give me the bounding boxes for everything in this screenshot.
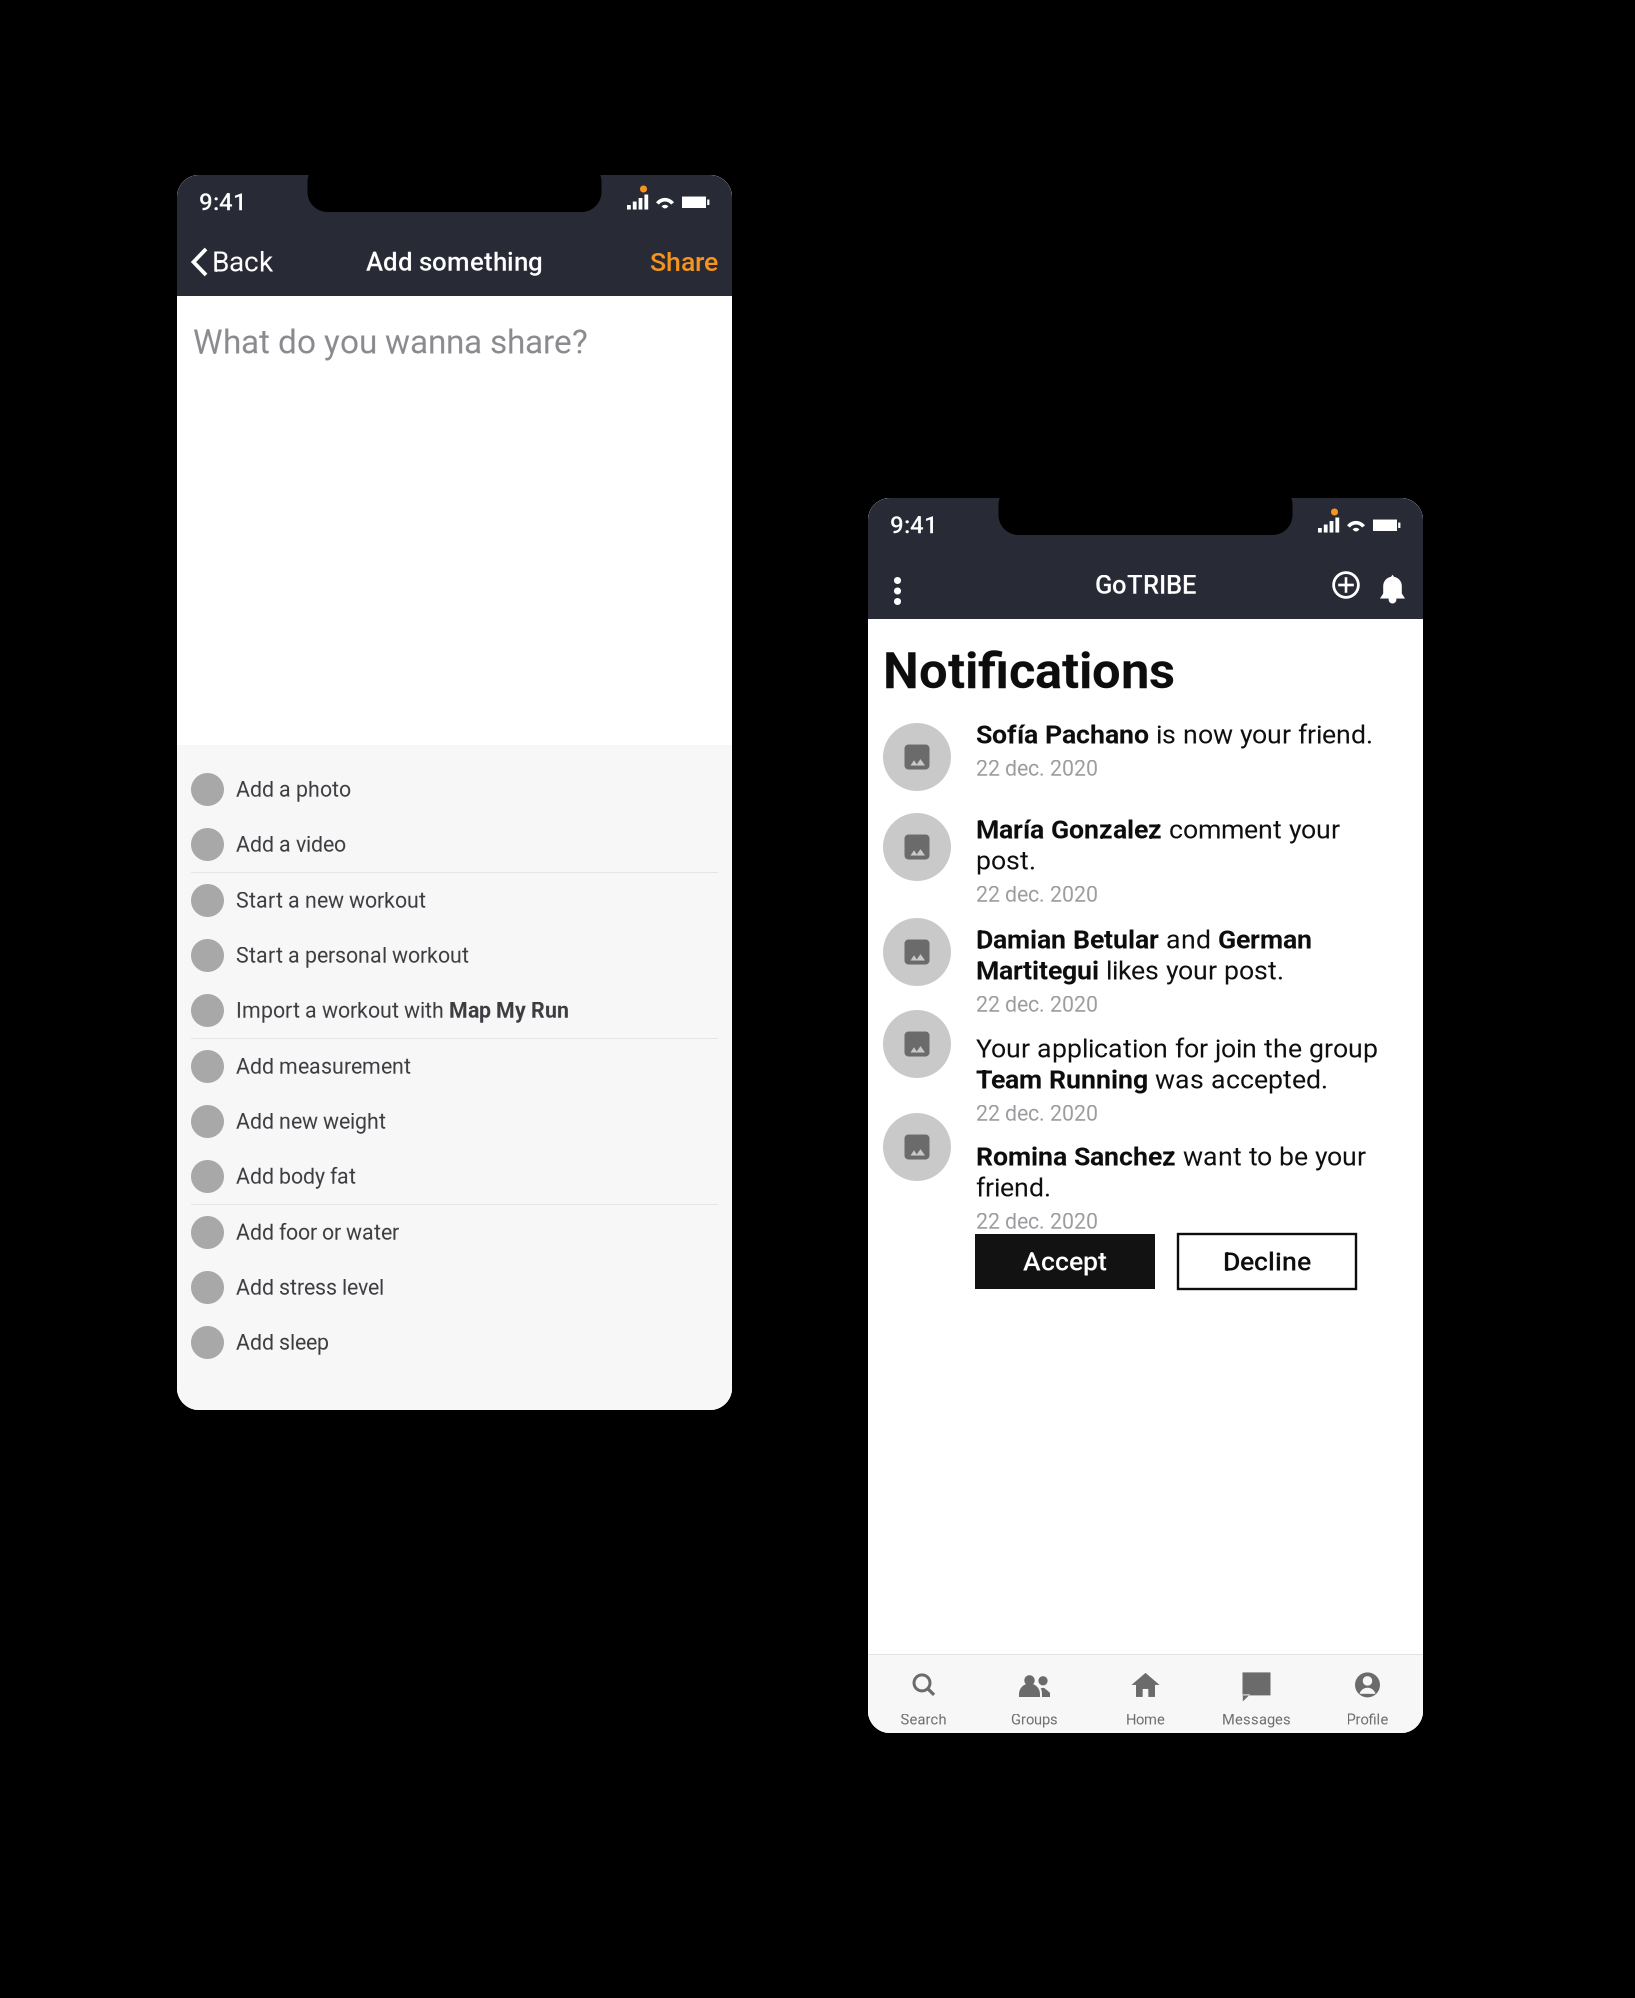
staticText: Decline bbox=[1223, 1246, 1311, 1277]
staticText: 22 dec. 2020 bbox=[976, 992, 1098, 1017]
staticText: María Gonzalez comment your bbox=[976, 814, 1340, 845]
staticText: Start a new workout bbox=[236, 888, 426, 913]
staticText: Damian Betular and German bbox=[976, 924, 1312, 955]
staticText: Back bbox=[212, 246, 273, 278]
staticText: Add foor or water bbox=[236, 1220, 399, 1245]
staticText: Accept bbox=[1023, 1246, 1107, 1277]
staticText: Add measurement bbox=[236, 1054, 411, 1079]
button[interactable]: Start a personal workout bbox=[177, 928, 732, 983]
button[interactable]: Add stress level bbox=[177, 1260, 732, 1315]
staticText: Groups bbox=[1011, 1711, 1058, 1728]
button[interactable]: Home bbox=[1090, 1655, 1201, 1733]
staticText: Your application for join the group bbox=[976, 1033, 1378, 1064]
button[interactable]: More options bbox=[868, 551, 921, 619]
staticText: 22 dec. 2020 bbox=[976, 1209, 1098, 1234]
staticText: Sofía Pachano is now your friend. bbox=[976, 719, 1373, 750]
staticText: Notifications bbox=[883, 642, 1175, 700]
staticText: Add a photo bbox=[236, 777, 351, 802]
staticText: 22 dec. 2020 bbox=[976, 756, 1098, 781]
button[interactable]: Notifications bbox=[1360, 551, 1423, 619]
button[interactable]: Start a new workout bbox=[177, 873, 732, 928]
staticText: Add body fat bbox=[236, 1164, 356, 1189]
button[interactable]: Add sleep bbox=[177, 1315, 732, 1370]
button[interactable]: Share bbox=[638, 228, 732, 296]
staticText: What do you wanna share? bbox=[193, 323, 588, 361]
button[interactable]: Messages bbox=[1201, 1655, 1312, 1733]
staticText: Add sleep bbox=[236, 1330, 329, 1355]
button[interactable]: Add measurement bbox=[177, 1039, 732, 1094]
button[interactable]: Back bbox=[177, 228, 285, 296]
staticText: friend. bbox=[976, 1172, 1051, 1203]
staticText: Martitegui likes your post. bbox=[976, 955, 1284, 986]
staticText: GoTRIBE bbox=[1095, 570, 1196, 600]
button[interactable]: Search bbox=[868, 1655, 979, 1733]
staticText: Add something bbox=[366, 247, 543, 277]
staticText: 9:41 bbox=[199, 188, 247, 216]
staticText: Import a workout with Map My Run bbox=[236, 998, 569, 1023]
staticText: Start a personal workout bbox=[236, 943, 469, 968]
button[interactable]: Accept bbox=[975, 1234, 1155, 1289]
staticText: Share bbox=[650, 247, 718, 277]
button[interactable]: Profile bbox=[1312, 1655, 1423, 1733]
button[interactable]: Decline bbox=[1178, 1234, 1356, 1289]
staticText: Home bbox=[1126, 1711, 1165, 1728]
button[interactable]: Add body fat bbox=[177, 1149, 732, 1204]
button[interactable]: Add a photo bbox=[177, 762, 732, 817]
staticText: Search bbox=[900, 1711, 946, 1728]
staticText: Add new weight bbox=[236, 1109, 386, 1134]
button[interactable]: Add bbox=[1307, 551, 1360, 619]
button[interactable]: Import a workout with Map My Run bbox=[177, 983, 732, 1038]
staticText: Profile bbox=[1346, 1711, 1388, 1728]
staticText: 22 dec. 2020 bbox=[976, 1101, 1098, 1126]
staticText: Add stress level bbox=[236, 1275, 384, 1300]
staticText: post. bbox=[976, 845, 1036, 876]
staticText: Team Running was accepted. bbox=[976, 1064, 1328, 1095]
button[interactable]: Groups bbox=[979, 1655, 1090, 1733]
button[interactable]: Add a video bbox=[177, 817, 732, 872]
staticText: 22 dec. 2020 bbox=[976, 882, 1098, 907]
staticText: Messages bbox=[1222, 1711, 1291, 1728]
staticText: Romina Sanchez want to be your bbox=[976, 1141, 1366, 1172]
staticText: Add a video bbox=[236, 832, 346, 857]
staticText: 9:41 bbox=[890, 511, 938, 539]
button[interactable]: Add foor or water bbox=[177, 1205, 732, 1260]
button[interactable]: Add new weight bbox=[177, 1094, 732, 1149]
